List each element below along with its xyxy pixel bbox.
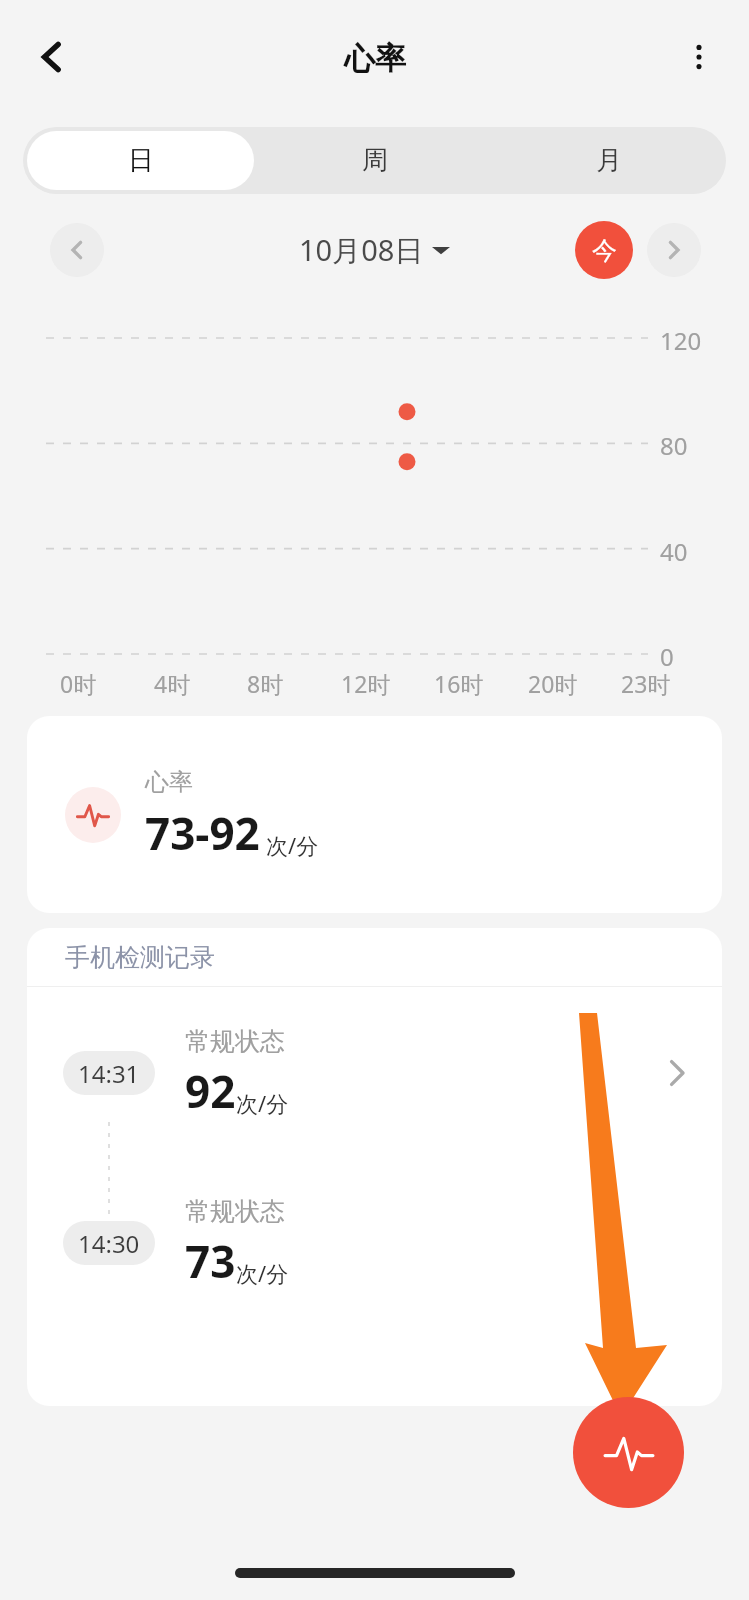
button[interactable]: More options (671, 29, 727, 85)
staticText: 常规状态 (185, 1026, 285, 1057)
button[interactable]: Next day (647, 223, 701, 277)
staticText: 14:31 (78, 1057, 140, 1090)
staticText: 40 (660, 535, 688, 568)
staticText: 0 (660, 640, 674, 673)
staticText: 20时 (528, 668, 578, 699)
staticText: 今 (592, 235, 617, 266)
button[interactable]: 今 (575, 221, 633, 279)
staticText: 0时 (60, 668, 97, 699)
staticText: 80 (660, 429, 688, 462)
staticText: 73-92 (145, 803, 260, 863)
button[interactable]: 心率 (27, 716, 722, 913)
staticText: 73 (185, 1231, 236, 1291)
staticText: 8时 (247, 668, 284, 699)
staticText: 日 (128, 144, 154, 177)
button[interactable]: 14:31 (27, 1013, 722, 1133)
staticText: 14:30 (78, 1227, 140, 1260)
staticText: 92 (185, 1061, 236, 1121)
staticText: 12时 (341, 668, 391, 699)
staticText: 次/分 (236, 1088, 289, 1118)
button[interactable]: Previous day (50, 223, 104, 277)
button[interactable]: Back (22, 27, 82, 87)
staticText: 4时 (154, 668, 191, 699)
staticText: 次/分 (236, 1258, 289, 1288)
button[interactable]: Measure heart rate (573, 1397, 684, 1508)
staticText: 心率 (145, 767, 193, 797)
staticText: 手机检测记录 (65, 942, 215, 973)
staticText: 常规状态 (185, 1196, 285, 1227)
button[interactable]: 14:30 (27, 1183, 722, 1303)
staticText: 月 (596, 144, 622, 177)
button[interactable]: 日 (27, 131, 254, 190)
staticText: 120 (660, 324, 702, 357)
button[interactable]: 周 (262, 131, 488, 190)
staticText: 16时 (434, 668, 484, 699)
staticText: 23时 (621, 668, 671, 699)
button[interactable]: 10月08日 (299, 230, 450, 270)
staticText: 周 (362, 144, 388, 177)
button[interactable]: 月 (496, 131, 722, 190)
staticText: 10月08日 (299, 230, 424, 270)
staticText: 心率 (344, 39, 406, 78)
staticText: 次/分 (266, 830, 319, 860)
